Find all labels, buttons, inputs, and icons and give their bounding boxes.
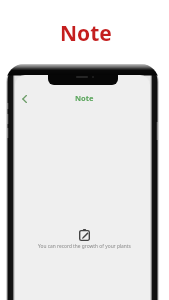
staticText: Note bbox=[60, 19, 112, 48]
staticText: Note bbox=[75, 93, 94, 103]
staticText: You can record the growth of your plants bbox=[38, 243, 131, 250]
button[interactable]: Back bbox=[17, 92, 31, 106]
